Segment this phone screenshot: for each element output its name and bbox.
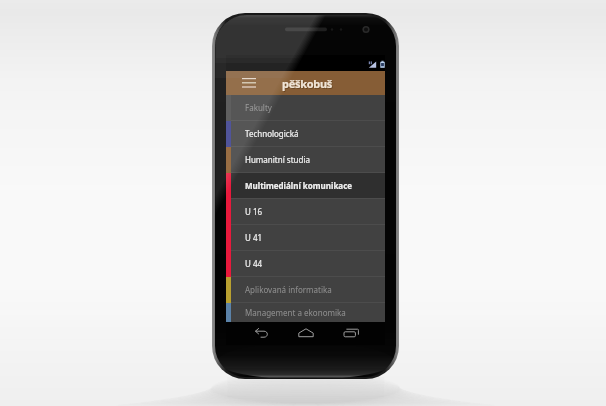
staticText: Technologická	[245, 128, 299, 139]
button[interactable]: Recent apps	[339, 322, 364, 345]
staticText: U 44	[245, 258, 263, 269]
staticText: pěškobuš	[282, 76, 332, 91]
button[interactable]: Aplikovaná informatika	[226, 277, 385, 302]
staticText: Humanitní studia	[245, 154, 310, 165]
button[interactable]: U 16	[226, 199, 385, 224]
button[interactable]: Technologická	[226, 121, 385, 146]
button[interactable]: U 41	[226, 225, 385, 250]
button[interactable]: Back	[250, 322, 275, 345]
staticText: Multimediální komunikace	[245, 180, 353, 191]
staticText: Aplikovaná informatika	[245, 284, 332, 295]
staticText: U 41	[245, 232, 263, 243]
button[interactable]: Open navigation menu	[226, 71, 271, 95]
staticText: pěškobuš	[283, 77, 333, 92]
staticText: U 16	[245, 206, 263, 217]
button[interactable]: Multimediální komunikace	[226, 173, 385, 198]
staticText: Fakulty	[245, 102, 272, 113]
button[interactable]: Management a ekonomika	[226, 303, 385, 322]
button[interactable]: Fakulty	[226, 95, 385, 120]
staticText: Management a ekonomika	[245, 307, 346, 318]
button[interactable]: Humanitní studia	[226, 147, 385, 172]
button[interactable]: U 44	[226, 251, 385, 276]
button[interactable]: Home	[294, 322, 319, 345]
